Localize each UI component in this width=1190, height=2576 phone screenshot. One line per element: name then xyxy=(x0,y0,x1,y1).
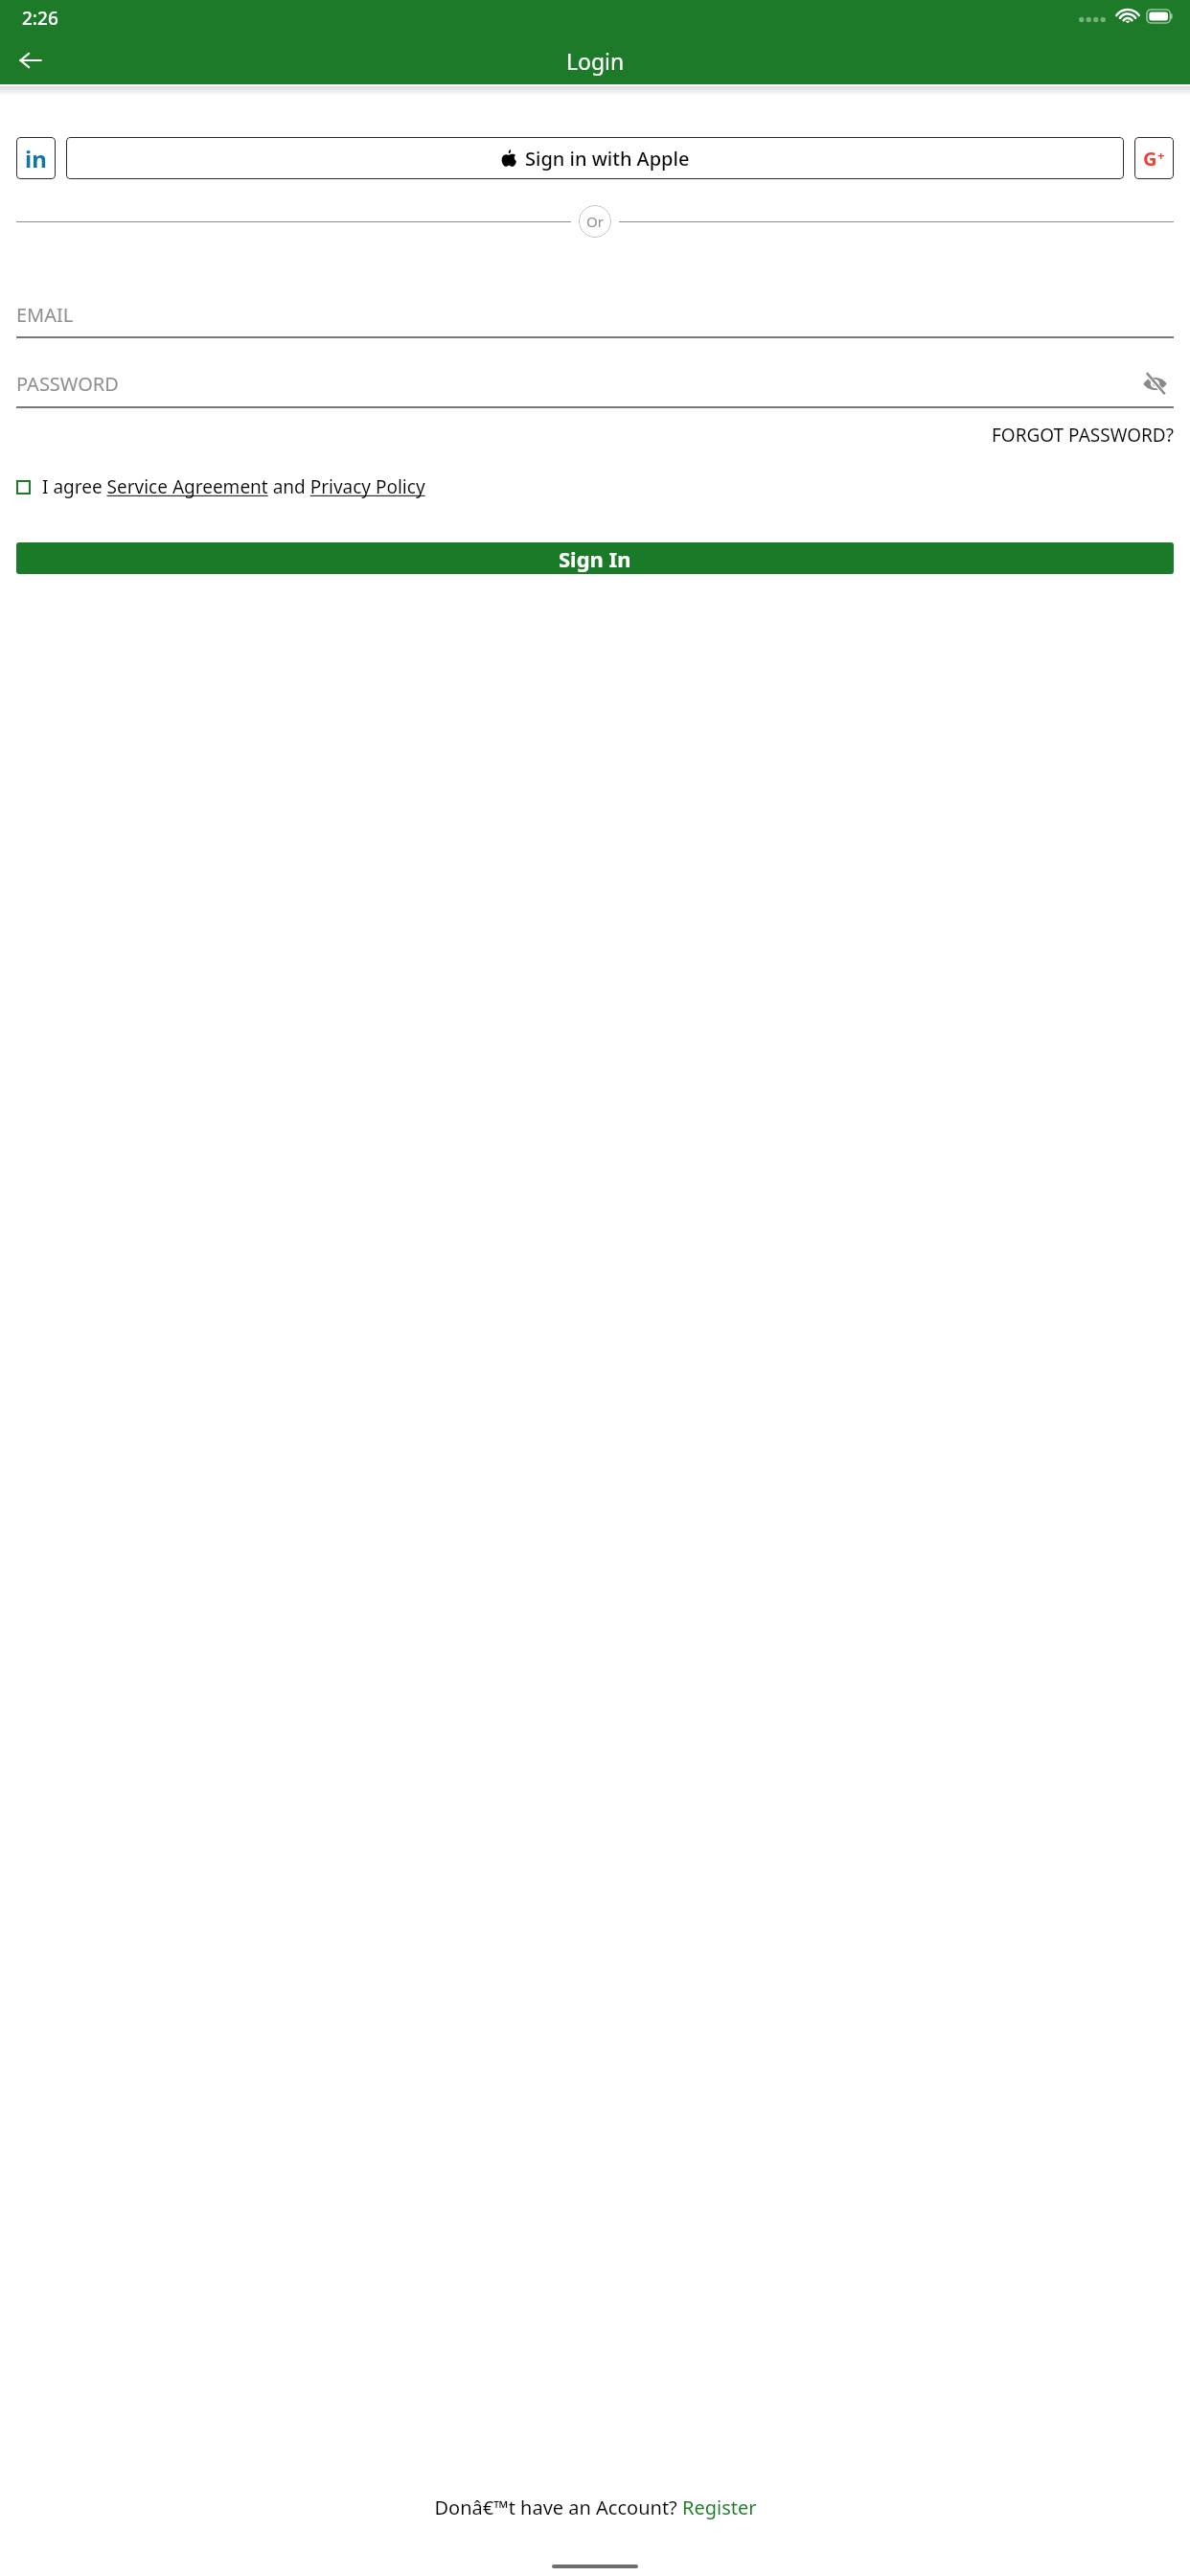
button[interactable]: Show password xyxy=(1135,364,1174,402)
staticText: Login xyxy=(566,46,625,76)
staticText: PASSWORD xyxy=(16,371,1135,397)
button[interactable]: Back xyxy=(8,37,54,83)
button[interactable]: I agree Service Agreement and Privacy Po… xyxy=(16,474,1174,499)
button[interactable]: Sign In xyxy=(16,542,1174,574)
staticText: Or xyxy=(586,212,604,231)
staticText: 2:26 xyxy=(22,6,58,31)
button[interactable]: Sign in with LinkedIn xyxy=(16,137,56,179)
button[interactable]: Sign in with Google Plus xyxy=(1134,137,1174,179)
staticText: G xyxy=(1143,146,1157,172)
button[interactable]: FORGOT PASSWORD? xyxy=(992,423,1174,448)
staticText: EMAIL xyxy=(16,302,74,328)
staticText: Sign In xyxy=(559,544,631,573)
button[interactable]: EMAIL xyxy=(16,302,1174,338)
staticText: in xyxy=(25,143,47,174)
button[interactable]: Sign in with Apple xyxy=(66,137,1124,179)
staticText: Sign in with Apple xyxy=(525,146,690,172)
staticText: I agree Service Agreement and Privacy Po… xyxy=(42,474,425,499)
staticText: + xyxy=(1157,147,1165,164)
button[interactable]: Donâ€™t have an Account? Register xyxy=(434,2495,757,2520)
